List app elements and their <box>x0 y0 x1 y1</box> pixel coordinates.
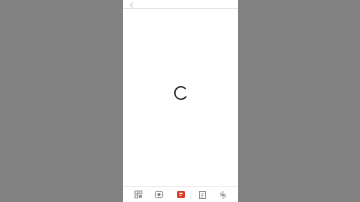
button[interactable]: Documents <box>193 187 211 202</box>
button[interactable]: Dashboard <box>129 187 147 202</box>
button[interactable]: Payments <box>214 187 232 202</box>
button[interactable]: Cards <box>150 187 168 202</box>
button[interactable]: Scan <box>172 187 190 202</box>
button[interactable]: Back <box>127 1 136 9</box>
